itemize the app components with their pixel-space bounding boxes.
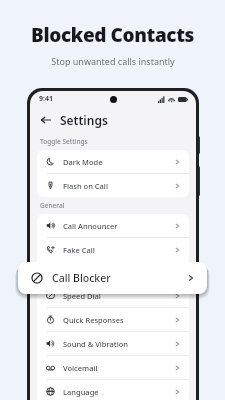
staticText: Voicemail	[63, 363, 98, 373]
button[interactable]: Back	[39, 113, 53, 127]
staticText: Settings	[60, 112, 108, 128]
staticText: Stop unwanted calls instantly	[51, 55, 175, 67]
staticText: 9:41	[39, 94, 53, 104]
staticText: Blocked Contacts	[31, 22, 194, 48]
staticText: Fake Call	[63, 245, 95, 255]
button[interactable]: Language	[37, 380, 189, 400]
button[interactable]: Dark Mode	[37, 150, 189, 173]
staticText: General	[40, 201, 65, 210]
staticText: Speed Dial	[63, 291, 101, 301]
button[interactable]: Fake Call	[37, 238, 189, 261]
staticText: Dark Mode	[63, 157, 103, 167]
staticText: Sound & Vibration	[63, 339, 128, 349]
button[interactable]: Sound & Vibration	[37, 332, 189, 355]
button[interactable]: Call Blocker	[18, 262, 207, 294]
button[interactable]: Voicemail	[37, 356, 189, 379]
staticText: Language	[63, 387, 99, 397]
staticText: Call Announcer	[63, 221, 118, 231]
staticText: Quick Responses	[63, 315, 124, 325]
staticText: Flash on Call	[63, 181, 108, 191]
button[interactable]: Call Announcer	[37, 214, 189, 237]
staticText: Toggle Settings	[40, 137, 88, 146]
button[interactable]: Flash on Call	[37, 174, 189, 197]
button[interactable]: Speed Dial	[37, 284, 189, 307]
staticText: Call Blocker	[52, 271, 111, 285]
button[interactable]: Quick Responses	[37, 308, 189, 331]
